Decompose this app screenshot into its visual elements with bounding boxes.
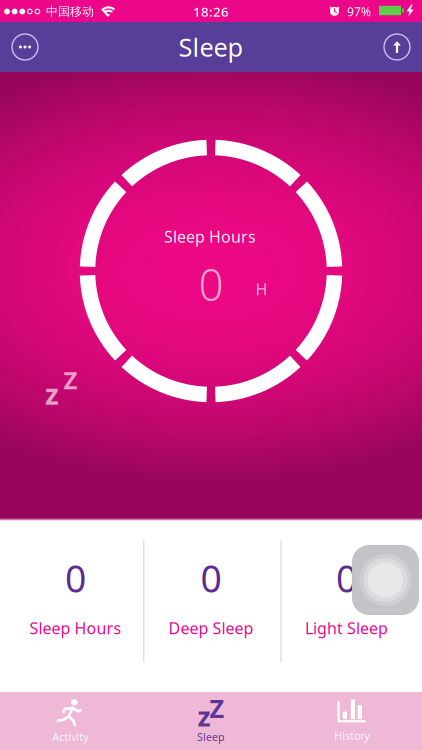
staticText: 中国移动 (46, 4, 94, 19)
staticText: z (197, 698, 210, 734)
staticText: 0 (200, 553, 221, 603)
staticText: Z (209, 691, 224, 725)
button[interactable]: More (10, 32, 40, 62)
staticText: 18:26 (193, 3, 229, 20)
staticText: H (255, 278, 267, 300)
button[interactable]: Activity (0, 693, 141, 749)
staticText: 97% (347, 3, 371, 19)
staticText: 0 (198, 255, 223, 313)
staticText: Light Sleep (305, 617, 388, 639)
staticText: 0 (336, 553, 357, 603)
button[interactable]: Share (382, 32, 412, 62)
staticText: 0 (65, 553, 86, 603)
staticText: Deep Sleep (168, 617, 253, 639)
staticText: Activity (52, 730, 88, 744)
staticText: History (334, 728, 369, 743)
staticText: Sleep Hours (164, 226, 256, 247)
staticText: z (45, 375, 59, 413)
staticText: Sleep (178, 30, 243, 64)
button[interactable]: AssistiveTouch (352, 545, 419, 615)
button[interactable]: History (281, 693, 422, 749)
staticText: Sleep (197, 730, 225, 744)
staticText: Z (63, 364, 77, 396)
button[interactable]: z (141, 693, 281, 749)
staticText: Sleep Hours (29, 617, 121, 639)
